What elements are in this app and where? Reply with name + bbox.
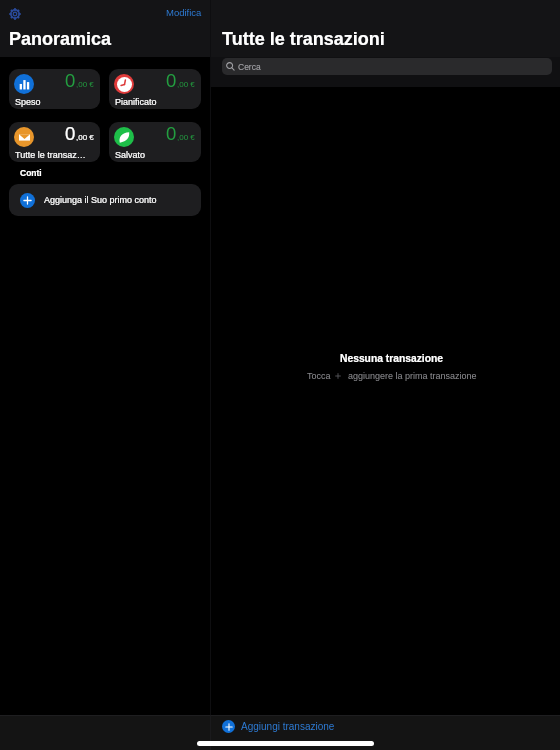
staticText: 0: [65, 70, 76, 91]
staticText: ,00 €: [177, 133, 195, 142]
button[interactable]: 0: [9, 122, 100, 162]
staticText: Speso: [15, 97, 41, 107]
staticText: Tutte le transazioni: [222, 29, 385, 49]
staticText: Cerca: [238, 62, 261, 71]
button[interactable]: 0: [9, 69, 100, 109]
button[interactable]: 0: [109, 69, 201, 109]
button[interactable]: Settings: [6, 5, 24, 23]
staticText: Conti: [20, 168, 42, 177]
staticText: Panoramica: [9, 29, 112, 49]
staticText: ,00 €: [177, 80, 195, 89]
staticText: 0: [166, 70, 177, 91]
staticText: 0: [166, 123, 177, 144]
button[interactable]: Aggiungi transazione: [222, 719, 335, 734]
staticText: Modifica: [166, 7, 202, 18]
staticText: Nessuna transazione: [340, 353, 444, 365]
staticText: Salvato: [115, 150, 146, 160]
staticText: ,00 €: [76, 80, 94, 89]
staticText: Tocca: [307, 371, 331, 381]
button[interactable]: Cerca: [222, 58, 552, 75]
button[interactable]: Aggiunga il Suo primo conto: [9, 184, 201, 216]
staticText: 0: [65, 123, 76, 144]
staticText: Aggiunga il Suo primo conto: [44, 195, 157, 205]
button[interactable]: 0: [109, 122, 201, 162]
button[interactable]: Modifica: [164, 6, 204, 19]
staticText: Tutte le transaz…: [15, 150, 86, 160]
staticText: Pianificato: [115, 97, 157, 107]
staticText: Aggiungi transazione: [241, 721, 335, 732]
staticText: ,00 €: [76, 133, 94, 142]
staticText: aggiungere la prima transazione: [348, 371, 477, 381]
